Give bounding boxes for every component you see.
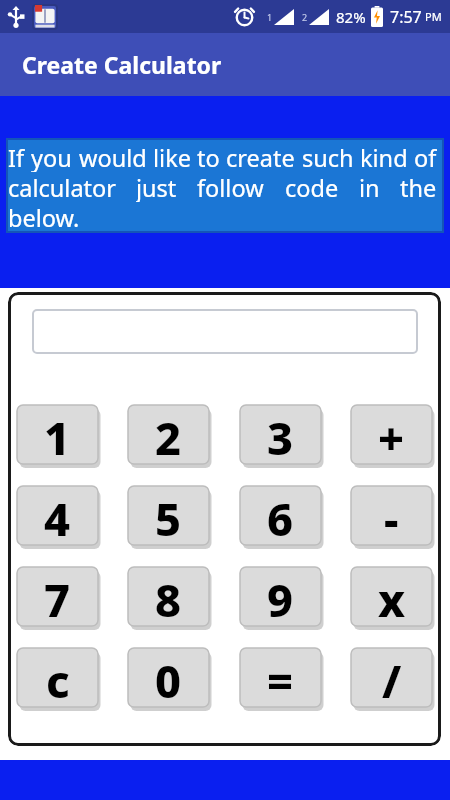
staticText: 1 — [44, 407, 71, 466]
staticText: = — [267, 650, 294, 709]
staticText: kind — [360, 142, 408, 172]
staticText: just — [136, 172, 177, 202]
staticText: 8 — [155, 569, 182, 628]
staticText: calculator — [8, 172, 116, 202]
staticText: - — [384, 488, 399, 547]
button[interactable]: x — [351, 567, 432, 626]
staticText: 1 — [267, 11, 273, 23]
button[interactable]: / — [351, 648, 432, 707]
staticText: 4 — [44, 488, 71, 547]
staticText: / — [382, 650, 402, 709]
staticText: 9 — [267, 569, 294, 628]
button[interactable]: 5 — [128, 486, 209, 545]
staticText: 3 — [267, 407, 294, 466]
button[interactable] — [32, 309, 418, 354]
staticText: create — [226, 142, 295, 172]
staticText: you — [31, 142, 72, 172]
button[interactable]: 8 — [128, 567, 209, 626]
staticText: 7:57 — [390, 6, 422, 28]
staticText: follow — [197, 172, 264, 202]
button[interactable]: = — [240, 648, 321, 707]
staticText: Create Calculator — [22, 49, 222, 80]
staticText: code — [285, 172, 339, 202]
staticText: c — [46, 650, 70, 709]
button[interactable]: If — [6, 138, 444, 233]
staticText: like — [153, 142, 191, 172]
staticText: 5 — [155, 488, 182, 547]
button[interactable]: Create Calculator — [0, 33, 450, 96]
button[interactable]: 7 — [17, 567, 98, 626]
button[interactable]: 3 — [240, 405, 321, 464]
staticText: of — [414, 142, 437, 172]
button[interactable]: 9 — [240, 567, 321, 626]
staticText: below. — [8, 202, 80, 233]
button[interactable]: 2 — [128, 405, 209, 464]
staticText: 7 — [44, 569, 71, 628]
button[interactable]: + — [351, 405, 432, 464]
staticText: x — [378, 569, 406, 628]
staticText: 82% — [336, 7, 366, 27]
button[interactable]: 1 — [17, 405, 98, 464]
button[interactable]: c — [17, 648, 98, 707]
staticText: the — [400, 172, 437, 202]
staticText: If — [8, 142, 25, 172]
staticText: 0 — [155, 650, 182, 709]
button[interactable]: 0 — [128, 648, 209, 707]
button[interactable]: 6 — [240, 486, 321, 545]
staticText: such — [302, 142, 354, 172]
staticText: to — [197, 142, 220, 172]
staticText: would — [79, 142, 147, 172]
staticText: + — [378, 407, 405, 466]
button[interactable]: - — [351, 486, 432, 545]
button[interactable]: 4 — [17, 486, 98, 545]
staticText: PM — [425, 9, 442, 24]
staticText: 2 — [302, 11, 308, 23]
staticText: 6 — [267, 488, 294, 547]
staticText: in — [359, 172, 380, 202]
staticText: 2 — [155, 407, 182, 466]
